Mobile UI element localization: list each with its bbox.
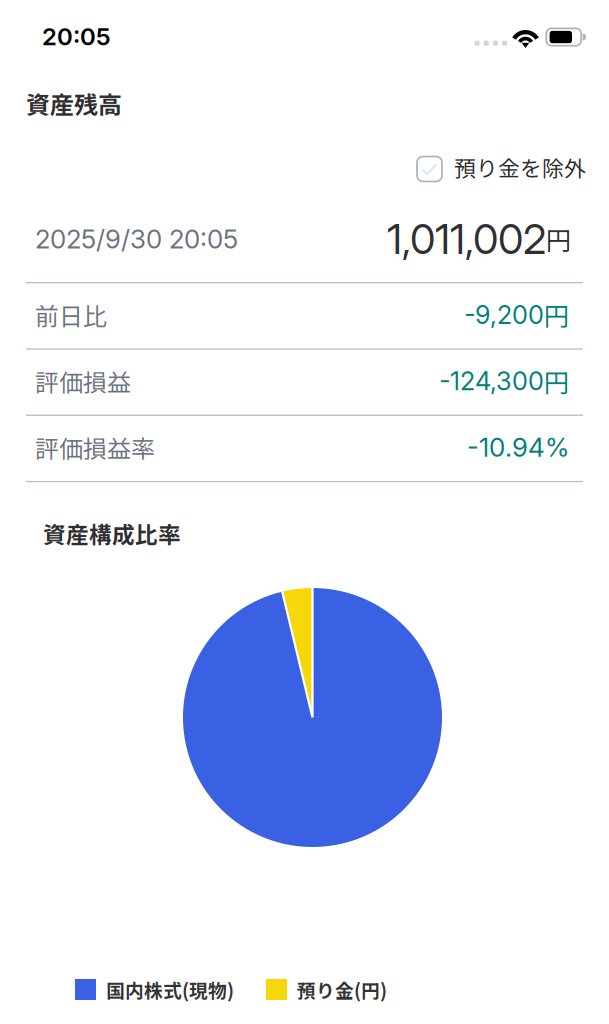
staticText: 資産残高 [26,86,122,121]
staticText: 預り金を除外 [454,151,586,183]
staticText: 円 [544,363,569,399]
staticText: 2025/9/30 20:05 [35,223,238,255]
staticText: -10.94% [467,432,569,463]
staticText: 円 [546,221,571,257]
staticText: 前日比 [35,297,107,332]
staticText: 1,011,002 [387,214,546,264]
staticText: 国内株式(現物) [106,976,234,1003]
staticText: 評価損益率 [35,430,155,465]
staticText: 預り金(円) [297,976,387,1003]
staticText: 評価損益 [35,364,131,398]
staticText: 20:05 [42,22,111,51]
staticText: -124,300 [439,366,544,396]
staticText: 円 [544,296,569,333]
staticText: 資産構成比率 [43,517,181,550]
button[interactable]: 預り金を除外 [0,141,609,197]
staticText: -9,200 [464,299,544,330]
